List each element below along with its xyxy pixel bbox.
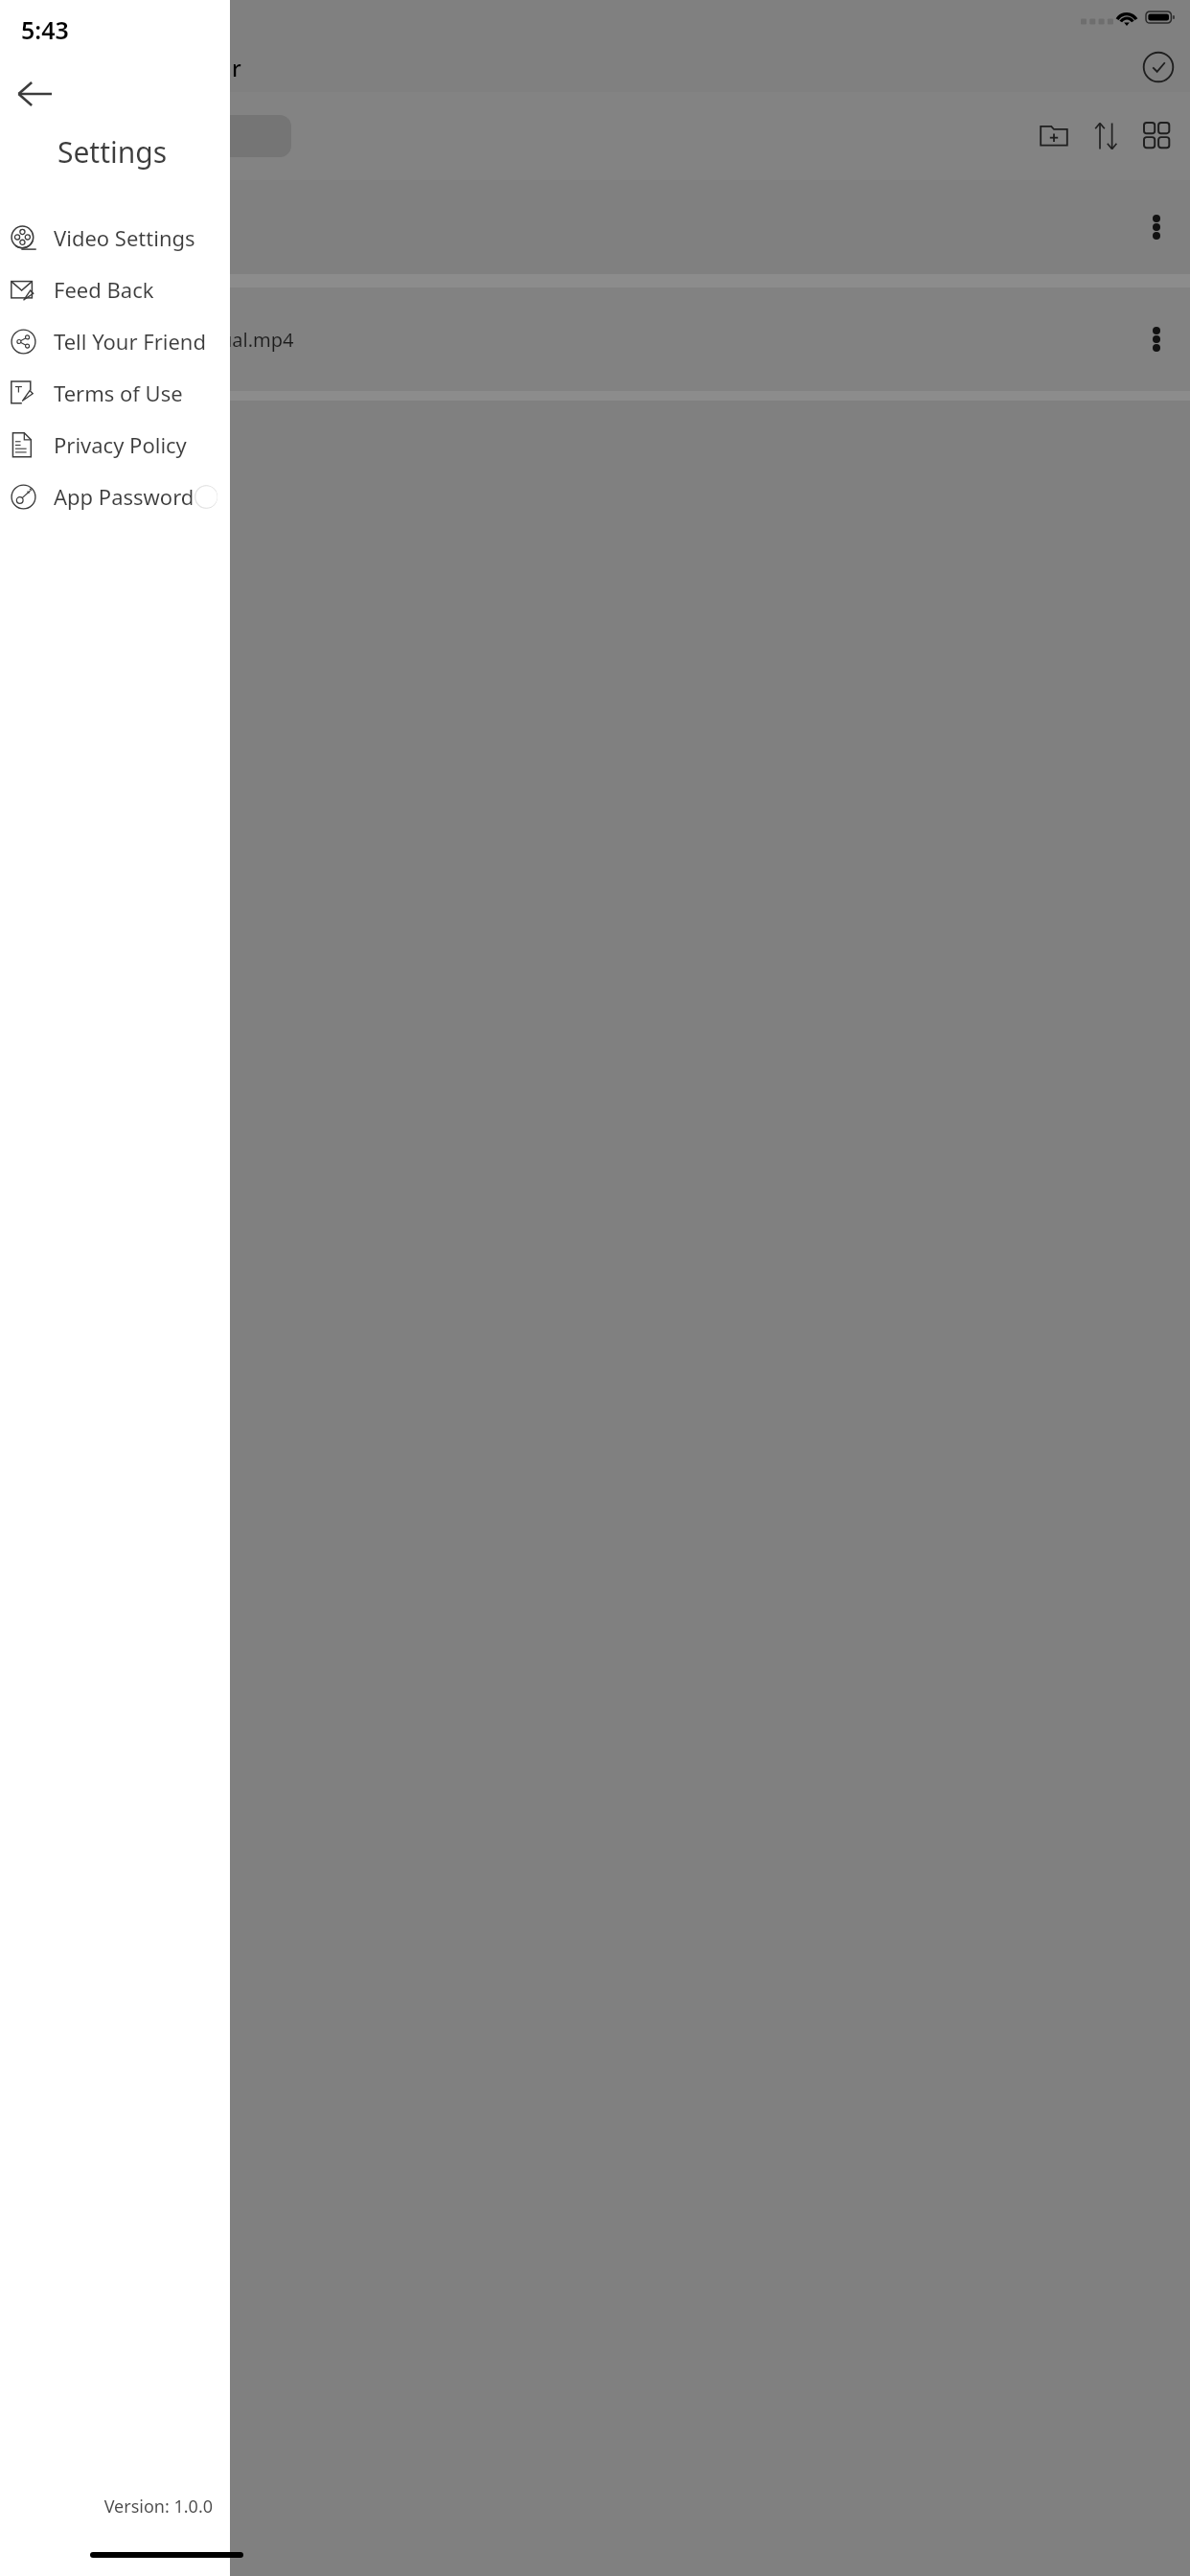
button[interactable]: Privacy Policy [0, 419, 230, 471]
button[interactable]: New folder [1035, 117, 1073, 155]
button[interactable]: Grid view [1138, 117, 1177, 155]
staticText: Privacy Policy [54, 430, 187, 459]
button[interactable]: ual.mp4 [0, 287, 1190, 391]
button[interactable] [192, 115, 291, 157]
button[interactable]: Select all [1142, 51, 1175, 83]
staticText: Settings [0, 132, 224, 172]
staticText: Tell Your Friend [54, 327, 206, 356]
button[interactable]: App Password [0, 471, 230, 522]
staticText: Terms of Use [54, 379, 183, 407]
staticText: Version: 1.0.0 [0, 2495, 213, 2518]
button[interactable]: Back [8, 67, 61, 121]
staticText: Video Settings [54, 223, 195, 252]
staticText: 5:43 [21, 13, 69, 46]
staticText: Feed Back [54, 275, 154, 304]
button[interactable]: Video Settings [0, 212, 230, 264]
button[interactable]: More options [0, 180, 1190, 274]
staticText: ual.mp4 [220, 327, 294, 353]
button[interactable]: Sort [1087, 117, 1125, 155]
button[interactable]: Feed Back [0, 264, 230, 315]
button[interactable]: More options [1140, 323, 1173, 356]
staticText: r [232, 53, 241, 82]
button[interactable] [0, 274, 1190, 287]
button[interactable]: Terms of Use [0, 367, 230, 419]
button[interactable]: App password toggle [195, 485, 217, 509]
staticText: App Password [54, 482, 195, 511]
button[interactable]: Tell Your Friend [0, 315, 230, 367]
button[interactable]: More options [1140, 211, 1173, 243]
